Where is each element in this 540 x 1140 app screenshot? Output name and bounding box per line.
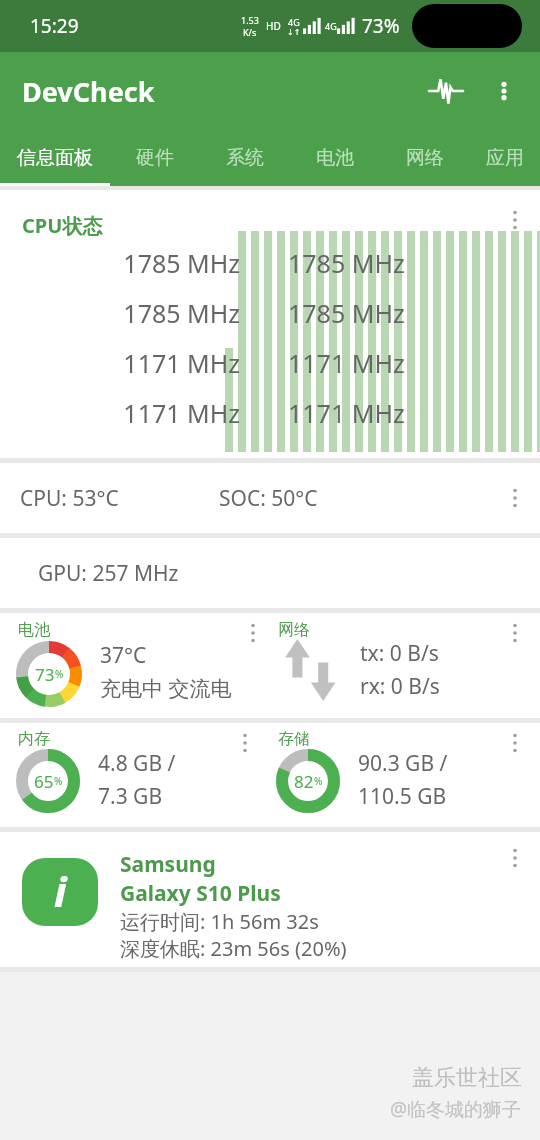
staticText: 1171 MHz bbox=[288, 346, 405, 380]
button[interactable]: 信息面板 bbox=[0, 130, 110, 186]
button[interactable]: Card options bbox=[498, 478, 532, 518]
staticText: 内存 bbox=[18, 729, 50, 749]
staticText: tx: 0 B/s bbox=[360, 639, 439, 668]
staticText: 运行时间: 1h 56m 32s bbox=[120, 908, 319, 935]
staticText: rx: 0 B/s bbox=[360, 672, 440, 701]
staticText: 1171 MHz bbox=[0, 346, 240, 380]
staticText: K/s bbox=[243, 26, 257, 38]
button[interactable]: 存储 bbox=[270, 723, 540, 827]
button[interactable]: Monitor bbox=[420, 65, 472, 117]
staticText: 110.5 GB bbox=[358, 782, 447, 811]
staticText: SOC: 50°C bbox=[219, 484, 318, 513]
staticText: 37°C bbox=[100, 641, 147, 670]
staticText: 65 bbox=[34, 770, 54, 793]
staticText: 网络 bbox=[278, 620, 310, 640]
staticText: 1171 MHz bbox=[0, 396, 240, 430]
button[interactable]: Card options bbox=[498, 723, 532, 763]
staticText: 系统 bbox=[226, 146, 264, 170]
staticText: ↓↑ bbox=[287, 28, 301, 37]
staticText: 82 bbox=[294, 770, 314, 793]
staticText: 90.3 GB / bbox=[358, 749, 448, 778]
button[interactable]: 硬件 bbox=[110, 130, 200, 186]
staticText: % bbox=[54, 774, 63, 788]
button[interactable]: More options bbox=[480, 67, 528, 115]
staticText: 1785 MHz bbox=[0, 246, 240, 280]
staticText: HD bbox=[266, 19, 281, 33]
staticText: % bbox=[55, 667, 64, 681]
staticText: CPU: 53°C bbox=[20, 484, 119, 513]
button[interactable]: 系统 bbox=[200, 130, 290, 186]
staticText: 电池 bbox=[316, 146, 354, 170]
staticText: 1785 MHz bbox=[288, 246, 405, 280]
button[interactable]: 网络 bbox=[270, 613, 540, 718]
staticText: 存储 bbox=[278, 729, 310, 749]
button[interactable]: Card options bbox=[498, 613, 532, 653]
button[interactable]: i bbox=[0, 832, 540, 967]
staticText: 1171 MHz bbox=[288, 396, 405, 430]
button[interactable]: Card options bbox=[498, 838, 532, 878]
button[interactable]: CPU: 53°C bbox=[0, 463, 540, 533]
staticText: 73 bbox=[35, 663, 55, 686]
button[interactable]: 电池 bbox=[290, 130, 380, 186]
staticText: 信息面板 bbox=[17, 146, 93, 170]
staticText: 4.8 GB / bbox=[98, 749, 176, 778]
staticText: 应用 bbox=[486, 146, 524, 170]
staticText: 7.3 GB bbox=[98, 782, 163, 811]
staticText: 盖乐世社区 bbox=[412, 1064, 522, 1092]
staticText: CPU状态 bbox=[22, 212, 103, 239]
staticText: 网络 bbox=[406, 146, 444, 170]
staticText: i bbox=[54, 862, 67, 919]
staticText: 硬件 bbox=[136, 146, 174, 170]
button[interactable]: Card options bbox=[236, 613, 270, 653]
staticText: Galaxy S10 Plus bbox=[120, 879, 281, 908]
staticText: 15:29 bbox=[30, 13, 79, 39]
staticText: DevCheck bbox=[22, 73, 155, 110]
button[interactable]: Card options bbox=[498, 200, 532, 240]
staticText: 73% bbox=[362, 13, 400, 39]
staticText: % bbox=[314, 774, 323, 788]
staticText: 4G bbox=[288, 16, 300, 28]
staticText: @临冬城的狮子 bbox=[390, 1096, 522, 1122]
staticText: 电池 bbox=[18, 620, 50, 640]
staticText: 深度休眠: 23m 56s (20%) bbox=[120, 935, 347, 962]
staticText: Samsung bbox=[120, 850, 216, 879]
staticText: 充电中 交流电 bbox=[100, 674, 232, 703]
button[interactable]: Card options bbox=[228, 723, 262, 763]
button[interactable]: 网络 bbox=[380, 130, 470, 186]
staticText: 1785 MHz bbox=[0, 296, 240, 330]
button[interactable]: 内存 bbox=[0, 723, 270, 827]
staticText: 1785 MHz bbox=[288, 296, 405, 330]
staticText: 4G bbox=[325, 20, 337, 32]
button[interactable]: 应用 bbox=[470, 130, 540, 186]
button[interactable]: 电池 bbox=[0, 613, 270, 718]
staticText: 1.53 bbox=[241, 14, 259, 26]
staticText: GPU: 257 MHz bbox=[38, 559, 179, 588]
